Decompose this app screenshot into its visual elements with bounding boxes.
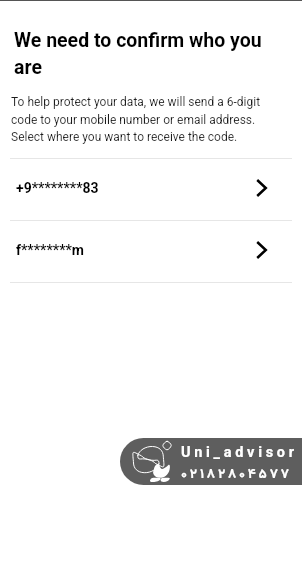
staticText: +9********83 xyxy=(16,180,99,196)
staticText: Uni_advisor xyxy=(181,444,298,461)
other: Open xyxy=(251,177,271,199)
staticText: To help protect your data, we will send … xyxy=(11,95,286,144)
button[interactable]: +9********83 xyxy=(0,159,302,220)
staticText: We need to confirm who you are xyxy=(14,29,270,78)
staticText: ۰۲۱۸۲۸۰۴۵۷۷ xyxy=(181,464,292,485)
button[interactable]: f********m xyxy=(0,221,302,282)
staticText: f********m xyxy=(16,242,84,258)
other: Open xyxy=(251,239,271,261)
